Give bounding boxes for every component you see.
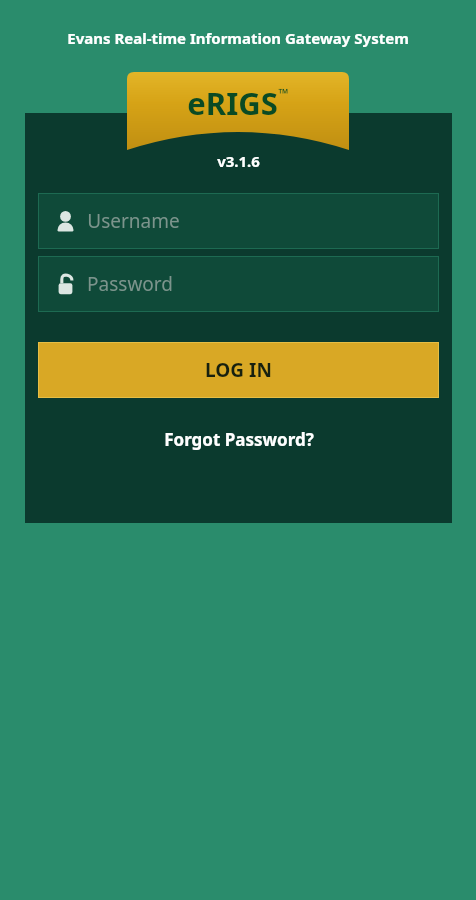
staticText: Forgot Password? [164, 428, 314, 451]
button[interactable]: Username [38, 193, 439, 249]
staticText: Evans Real-time Information Gateway Syst… [67, 28, 409, 48]
staticText: LOG IN [205, 357, 272, 383]
button[interactable]: Forgot Password? [148, 422, 330, 457]
staticText: Username [87, 208, 180, 234]
staticText: ™ [278, 84, 289, 102]
staticText: eRIGS [187, 82, 278, 124]
staticText: v3.1.6 [217, 151, 260, 171]
button[interactable]: Password [38, 256, 439, 312]
staticText: Password [87, 271, 173, 297]
button[interactable]: LOG IN [38, 342, 439, 398]
